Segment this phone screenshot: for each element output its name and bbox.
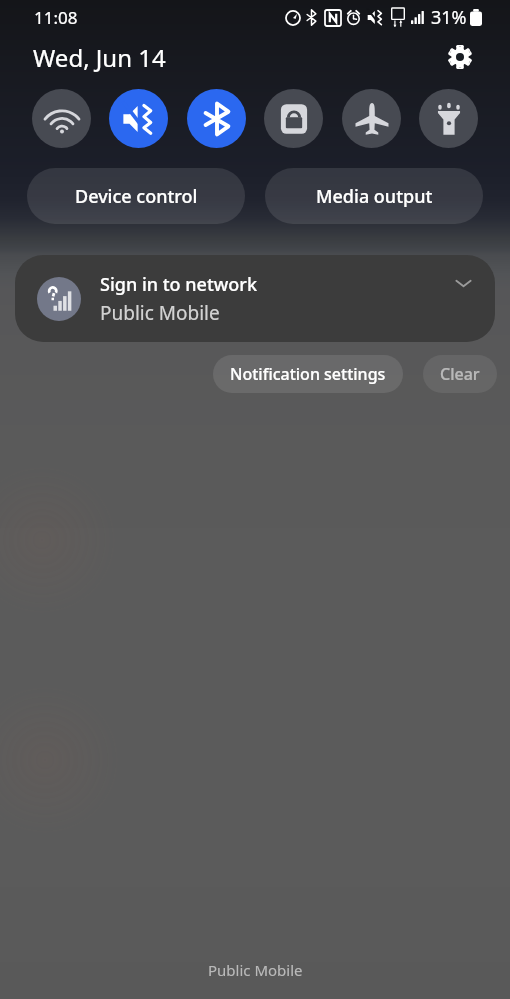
button[interactable]: Media output <box>265 168 483 224</box>
button[interactable]: Wi-Fi <box>32 89 91 148</box>
button[interactable]: Airplane mode <box>342 89 401 148</box>
staticText: Device control <box>75 184 198 209</box>
staticText: Clear <box>440 363 480 385</box>
button[interactable]: Flashlight <box>419 89 478 148</box>
button[interactable]: Sign in to network <box>15 255 495 342</box>
button[interactable]: Device control <box>27 168 245 224</box>
staticText: Media output <box>316 184 433 209</box>
staticText: Public Mobile <box>100 300 220 326</box>
staticText: Public Mobile <box>208 960 303 980</box>
button[interactable]: Settings <box>442 39 478 75</box>
staticText: Sign in to network <box>100 272 257 297</box>
button[interactable]: Notification settings <box>213 355 403 393</box>
staticText: 31% <box>431 5 467 30</box>
staticText: Notification settings <box>230 363 386 385</box>
button[interactable]: Sound <box>109 89 168 148</box>
button[interactable]: Clear <box>423 355 497 393</box>
button[interactable]: Expand notification <box>446 266 480 300</box>
staticText: 11:08 <box>34 6 78 29</box>
staticText: Wed, Jun 14 <box>33 41 166 74</box>
button[interactable]: Bluetooth <box>187 89 246 148</box>
button[interactable]: Secure lock <box>264 89 323 148</box>
